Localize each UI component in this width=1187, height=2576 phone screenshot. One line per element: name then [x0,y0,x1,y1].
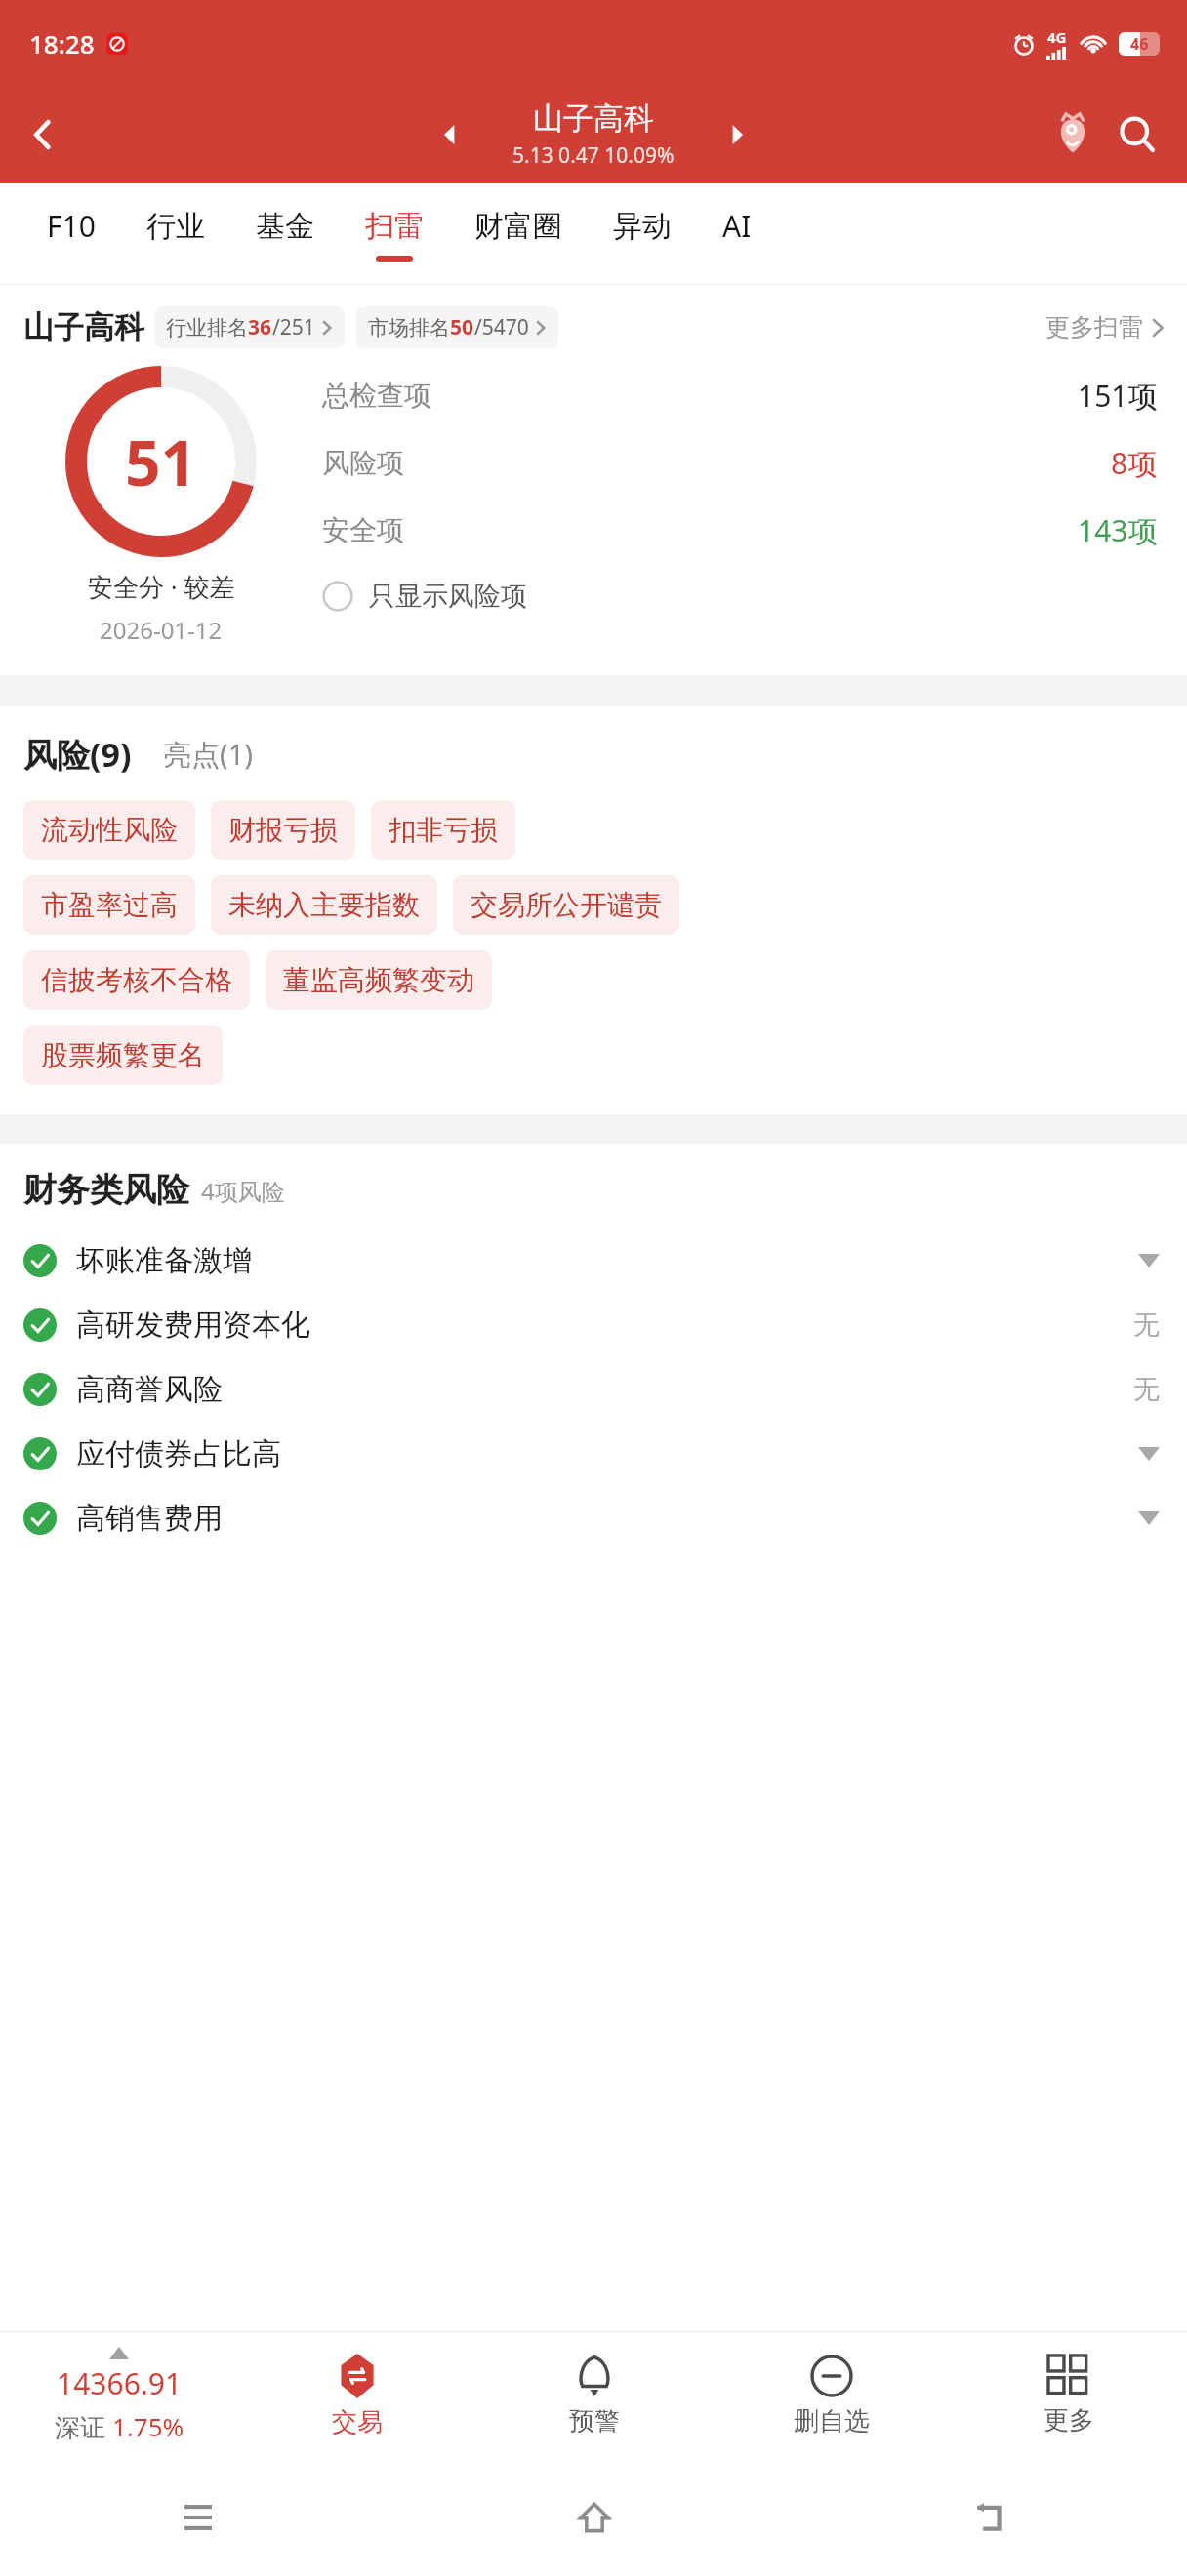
button[interactable]: 高研发费用资本化 [0,1293,1187,1357]
staticText: 1.75% [112,2409,184,2443]
staticText: 总检查项 [322,379,431,413]
staticText: 更多 [1044,2404,1094,2436]
button[interactable]: 基金 [230,183,340,285]
button[interactable]: Assistant [1041,102,1105,167]
button[interactable]: 只显示风险项 [322,580,527,613]
staticText: 安全项 [322,513,404,547]
staticText: 未纳入主要指数 [228,888,420,922]
staticText: 信披考核不合格 [41,963,232,997]
button[interactable]: Next stock [711,108,763,161]
staticText: 36 [248,313,272,342]
staticText: 交易所公开谴责 [471,888,662,922]
button[interactable]: 亮点(1) [163,735,253,777]
staticText: 高研发费用资本化 [76,1307,310,1344]
staticText: /251 [272,313,315,342]
staticText: 深证 [55,2409,112,2444]
staticText: 51 [125,420,197,504]
button[interactable]: 市盈率过高 [23,875,195,935]
staticText: 市盈率过高 [41,888,178,922]
staticText: 亮点(1) [163,735,253,774]
button[interactable]: Back [792,2459,1187,2576]
staticText: 行业排名 [166,315,248,341]
staticText: 财报亏损 [228,813,338,847]
button[interactable]: 交易所公开谴责 [453,875,679,935]
staticText: 151项 [1078,376,1158,416]
staticText: 董监高频繁变动 [283,963,474,997]
staticText: 46 [1130,33,1149,55]
staticText: 异动 [613,208,672,245]
staticText: 行业 [146,208,205,245]
staticText: 只显示风险项 [369,580,527,613]
button[interactable]: 扣非亏损 [371,800,515,860]
button[interactable]: 董监高频繁变动 [266,950,492,1010]
button[interactable]: 预警 [475,2332,713,2459]
button[interactable]: 扫雷 [340,183,449,285]
button[interactable]: 更多扫雷 [1045,312,1166,342]
button[interactable]: 市场排名 [356,306,558,348]
button[interactable]: 异动 [588,183,697,285]
staticText: 坏账准备激增 [76,1242,252,1279]
staticText: 高销售费用 [76,1500,223,1537]
staticText: 2026-01-12 [100,614,223,646]
button[interactable]: 应付债券占比高 [0,1422,1187,1486]
button[interactable]: 坏账准备激增 [0,1228,1187,1293]
button[interactable]: Previous stock [424,108,476,161]
staticText: 股票频繁更名 [41,1038,205,1072]
button[interactable]: Home [396,2459,792,2576]
staticText: 山子高科 [23,308,144,346]
button[interactable]: 未纳入主要指数 [211,875,437,935]
button[interactable]: 高商誉风险 [0,1357,1187,1422]
staticText: 5.13 0.47 10.09% [512,141,675,170]
staticText: 无 [1133,1373,1160,1406]
staticText: 应付债券占比高 [76,1435,281,1472]
button[interactable]: 股票频繁更名 [23,1026,223,1085]
staticText: 高商誉风险 [76,1371,223,1408]
button[interactable]: 更多 [950,2332,1187,2459]
staticText: 市场排名 [368,315,450,341]
staticText: 财务类风险 [23,1169,189,1211]
button[interactable]: 财报亏损 [211,800,355,860]
staticText: /5470 [474,313,529,342]
staticText: 风险项 [322,446,404,480]
staticText: 财富圈 [474,208,562,245]
button[interactable]: 交易 [238,2332,475,2459]
staticText: 18:28 [29,26,95,60]
staticText: 基金 [256,208,314,245]
staticText: 无 [1133,1308,1160,1342]
staticText: 更多扫雷 [1045,312,1143,342]
button[interactable]: 财富圈 [449,183,588,285]
staticText: 流动性风险 [41,813,178,847]
staticText: 8项 [1111,443,1158,483]
button[interactable]: 信披考核不合格 [23,950,250,1010]
button[interactable]: 删自选 [713,2332,950,2459]
staticText: 14366.91 [57,2363,183,2403]
staticText: 扫雷 [365,208,424,245]
staticText: 4G [1047,27,1067,47]
staticText: 预警 [569,2405,620,2437]
staticText: 50 [450,313,474,342]
button[interactable]: AI [697,183,777,285]
button[interactable]: Back [12,103,74,166]
staticText: 风险(9) [23,732,132,777]
button[interactable]: 风险(9) [23,732,132,777]
button[interactable]: 流动性风险 [23,800,195,860]
staticText: 删自选 [794,2405,870,2437]
staticText: 安全分 · 较差 [88,569,235,604]
button[interactable]: 高销售费用 [0,1486,1187,1550]
staticText: 4项风险 [201,1175,285,1207]
button[interactable]: Search [1105,102,1169,167]
button[interactable]: 行业 [121,183,230,285]
staticText: F10 [47,206,96,246]
button[interactable]: 14366.91 [0,2347,238,2444]
staticText: 交易 [332,2406,383,2438]
staticText: 扣非亏损 [389,813,498,847]
button[interactable]: Recents [0,2459,396,2576]
staticText: AI [722,206,752,246]
button[interactable]: 行业排名 [154,306,345,348]
button[interactable]: F10 [21,183,121,285]
staticText: 143项 [1078,510,1158,550]
staticText: 山子高科 [533,100,654,138]
